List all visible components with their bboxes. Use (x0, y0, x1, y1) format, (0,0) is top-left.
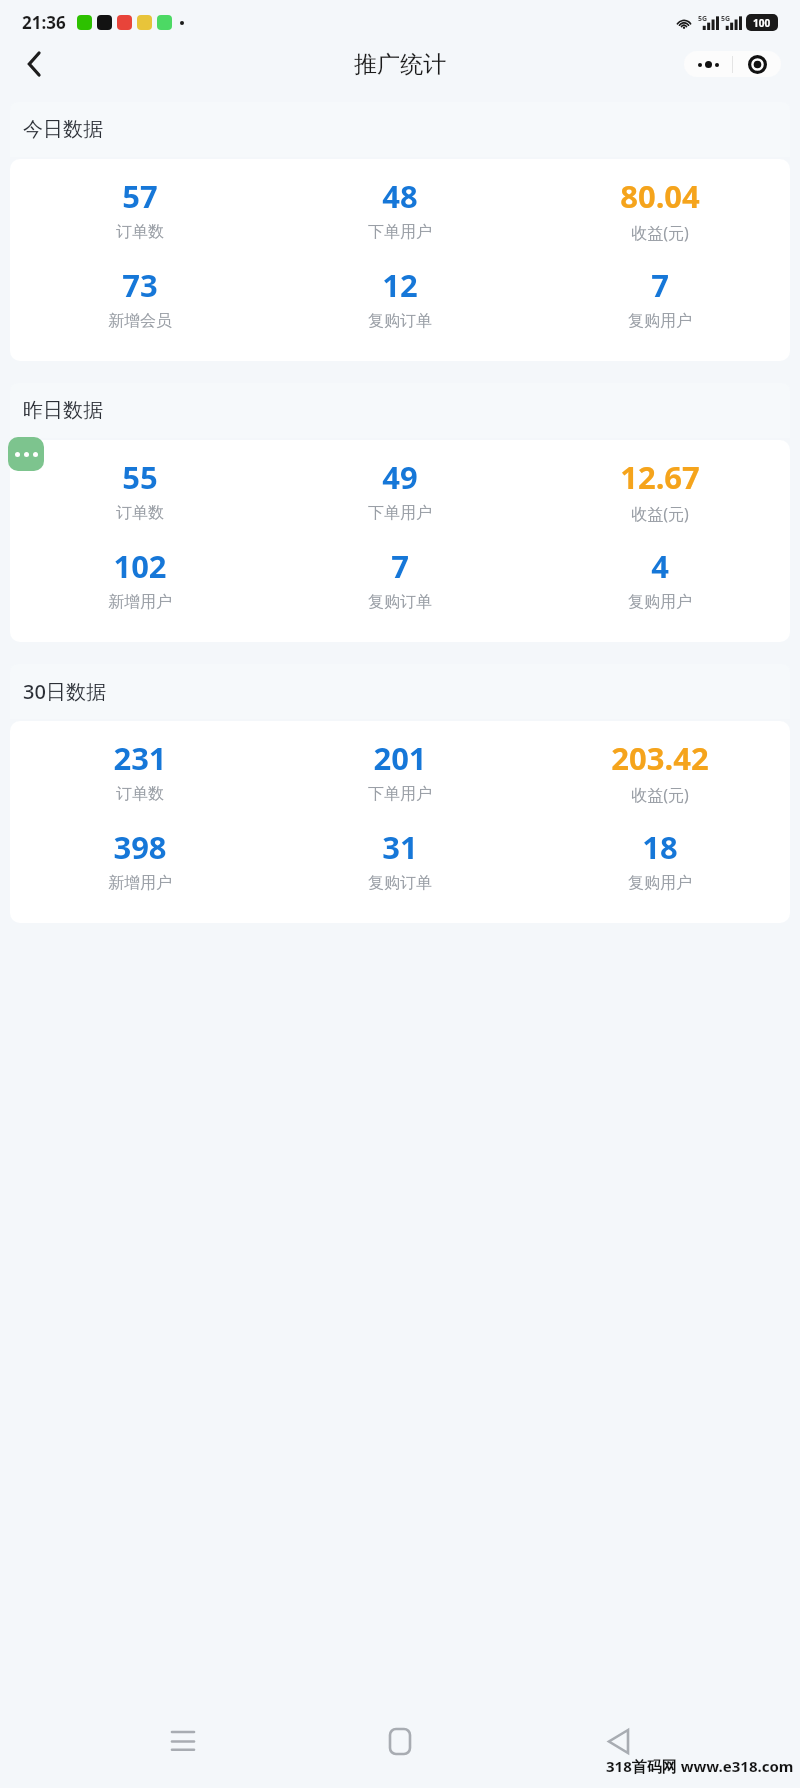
staticText: 100 (753, 16, 771, 30)
button[interactable]: Home (365, 1706, 435, 1776)
staticText: 80.04 (620, 175, 700, 217)
staticText: 5G (698, 14, 708, 24)
staticText: 48 (382, 175, 418, 217)
staticText: 5G (721, 14, 731, 24)
button[interactable]: Close (733, 55, 781, 74)
button[interactable]: Menu (684, 61, 732, 68)
button[interactable]: Back (12, 44, 56, 84)
staticText: 398 (113, 826, 167, 868)
staticText: 4 (651, 545, 669, 587)
button[interactable]: 203.42 (530, 737, 790, 806)
staticText: 收益(元) (631, 784, 689, 806)
staticText: 复购订单 (368, 311, 432, 331)
button[interactable]: 7 (270, 545, 530, 612)
button[interactable]: 7 (530, 264, 790, 331)
staticText: 21:36 (22, 11, 66, 34)
button[interactable]: More options (8, 437, 44, 471)
staticText: 下单用户 (368, 784, 432, 804)
button[interactable]: 57 (10, 175, 270, 242)
staticText: 推广统计 (354, 50, 446, 79)
staticText: 73 (122, 264, 158, 306)
button[interactable]: 12.67 (530, 456, 790, 525)
staticText: 12.67 (620, 456, 700, 498)
staticText: 下单用户 (368, 503, 432, 523)
button[interactable]: 49 (270, 456, 530, 523)
staticText: 新增会员 (108, 311, 172, 331)
staticText: 昨日数据 (23, 398, 103, 423)
button[interactable]: 398 (10, 826, 270, 893)
staticText: 复购用户 (628, 311, 692, 331)
staticText: 复购订单 (368, 873, 432, 893)
button[interactable]: Recent apps (148, 1706, 218, 1776)
staticText: 49 (382, 456, 418, 498)
staticText: 今日数据 (23, 117, 103, 142)
staticText: 订单数 (116, 784, 164, 804)
button[interactable]: 80.04 (530, 175, 790, 244)
staticText: 201 (373, 737, 427, 779)
button[interactable]: 48 (270, 175, 530, 242)
staticText: 7 (391, 545, 409, 587)
staticText: 102 (113, 545, 167, 587)
staticText: 复购用户 (628, 873, 692, 893)
staticText: 203.42 (611, 737, 709, 779)
button[interactable]: 73 (10, 264, 270, 331)
button[interactable]: 12 (270, 264, 530, 331)
staticText: 31 (382, 826, 418, 868)
staticText: 57 (122, 175, 158, 217)
staticText: 231 (113, 737, 167, 779)
staticText: 7 (651, 264, 669, 306)
button[interactable]: 201 (270, 737, 530, 804)
button[interactable]: 18 (530, 826, 790, 893)
button[interactable]: 102 (10, 545, 270, 612)
button[interactable]: 31 (270, 826, 530, 893)
staticText: 复购用户 (628, 592, 692, 612)
staticText: 订单数 (116, 222, 164, 242)
staticText: 收益(元) (631, 222, 689, 244)
staticText: 55 (122, 456, 158, 498)
staticText: 318首码网 www.e318.com (606, 1756, 794, 1776)
staticText: 订单数 (116, 503, 164, 523)
staticText: 复购订单 (368, 592, 432, 612)
staticText: 下单用户 (368, 222, 432, 242)
staticText: 新增用户 (108, 873, 172, 893)
button[interactable]: 231 (10, 737, 270, 804)
staticText: 新增用户 (108, 592, 172, 612)
staticText: 12 (382, 264, 418, 306)
staticText: 18 (642, 826, 678, 868)
staticText: 30日数据 (23, 678, 106, 705)
button[interactable]: 55 (10, 456, 270, 523)
button[interactable]: 4 (530, 545, 790, 612)
button[interactable]: Back (583, 1706, 653, 1776)
staticText: 收益(元) (631, 503, 689, 525)
